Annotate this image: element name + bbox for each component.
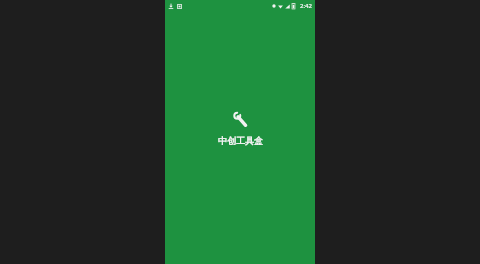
staticText: 中创工具盒 [218, 135, 263, 146]
other: App logo wrench [232, 111, 249, 128]
staticText: 2:42 [300, 2, 312, 10]
